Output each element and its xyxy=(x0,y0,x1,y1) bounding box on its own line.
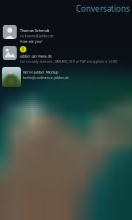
staticText: Thomas Schmidt xyxy=(20,28,49,33)
button[interactable]: 1 xyxy=(0,46,132,67)
staticText: berlin@conference.jabber.de xyxy=(23,75,69,80)
staticText: For security reasons, OMEMO, OTR or PGP … xyxy=(20,59,117,64)
staticText: 1 xyxy=(22,46,25,52)
staticText: jabber-germany.de xyxy=(20,53,52,58)
staticText: How are you? xyxy=(20,39,43,44)
button[interactable]: Berlin Jabber Meetup xyxy=(0,67,132,89)
button[interactable]: Thomas Schmidt xyxy=(0,25,132,46)
staticText: Berlin Jabber Meetup xyxy=(23,70,58,75)
staticText: nickname@jabber.de xyxy=(20,34,54,38)
staticText: Conversations xyxy=(76,3,130,14)
